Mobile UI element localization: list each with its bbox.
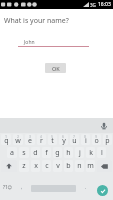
staticText: 7 xyxy=(73,134,76,139)
button[interactable]: 3 xyxy=(25,134,35,145)
staticText: w xyxy=(15,136,21,145)
staticText: o xyxy=(94,136,99,145)
button[interactable]: d xyxy=(31,147,40,158)
staticText: b xyxy=(66,161,71,171)
button[interactable]: j xyxy=(75,147,84,158)
button[interactable]: Shift xyxy=(1,160,17,172)
staticText: . xyxy=(85,184,87,191)
staticText: p xyxy=(105,136,110,145)
button[interactable]: 0 xyxy=(103,134,112,145)
staticText: 0 xyxy=(106,134,109,139)
button[interactable]: ?1☺ xyxy=(1,181,15,193)
button[interactable]: 6 xyxy=(59,134,68,145)
button[interactable]: 1 xyxy=(1,134,11,145)
staticText: l xyxy=(101,148,103,158)
staticText: 2 xyxy=(17,134,20,139)
staticText: What is your name? xyxy=(4,16,69,26)
staticText: k xyxy=(89,148,93,158)
button[interactable]: f xyxy=(42,147,51,158)
button[interactable]: 4 xyxy=(37,134,46,145)
button[interactable]: 5 xyxy=(48,134,57,145)
staticText: 3G xyxy=(90,2,96,8)
staticText: i xyxy=(85,136,87,145)
staticText: v xyxy=(56,161,60,171)
button[interactable]: 9 xyxy=(92,134,101,145)
button[interactable]: OK xyxy=(45,63,66,73)
staticText: 16:03 xyxy=(98,1,111,8)
staticText: 5 xyxy=(51,134,54,139)
staticText: g xyxy=(55,148,60,158)
button[interactable]: Backspace xyxy=(97,160,112,172)
button[interactable]: x xyxy=(31,160,40,172)
staticText: 4 xyxy=(40,134,43,139)
staticText: j xyxy=(79,148,81,158)
staticText: n xyxy=(77,161,82,171)
staticText: 3 xyxy=(29,134,32,139)
button[interactable]: l xyxy=(97,147,106,158)
button[interactable]: v xyxy=(53,160,62,172)
button[interactable]: , xyxy=(16,181,28,193)
staticText: 9 xyxy=(95,134,98,139)
button[interactable]: Voice input xyxy=(100,122,108,130)
staticText: d xyxy=(33,148,38,158)
button[interactable]: m xyxy=(86,160,95,172)
staticText: 8 xyxy=(84,134,87,139)
button[interactable]: b xyxy=(64,160,73,172)
staticText: , xyxy=(21,184,23,191)
button[interactable]: c xyxy=(42,160,51,172)
button[interactable]: h xyxy=(64,147,73,158)
staticText: z xyxy=(22,161,26,171)
staticText: q xyxy=(4,136,9,145)
button[interactable]: g xyxy=(53,147,62,158)
button[interactable]: n xyxy=(75,160,84,172)
button[interactable]: z xyxy=(19,160,29,172)
staticText: s xyxy=(22,148,26,158)
staticText: r xyxy=(40,136,43,145)
button[interactable]: k xyxy=(86,147,95,158)
button[interactable]: 2 xyxy=(13,134,23,145)
staticText: f xyxy=(45,148,48,158)
staticText: u xyxy=(72,136,77,145)
staticText: 6 xyxy=(62,134,65,139)
button[interactable]: Enter xyxy=(97,185,108,196)
staticText: 1 xyxy=(5,134,8,139)
staticText: ?1☺ xyxy=(3,184,13,190)
button[interactable]: 7 xyxy=(70,134,79,145)
staticText: OK xyxy=(52,65,60,72)
button[interactable]: a xyxy=(7,147,17,158)
staticText: h xyxy=(66,148,71,158)
staticText: x xyxy=(34,161,38,171)
staticText: y xyxy=(62,136,66,145)
staticText: m xyxy=(87,161,94,171)
button[interactable]: . xyxy=(80,181,92,193)
staticText: John xyxy=(24,39,35,46)
staticText: t xyxy=(51,136,54,145)
staticText: a xyxy=(10,148,14,158)
button[interactable]: s xyxy=(19,147,29,158)
staticText: e xyxy=(28,136,32,145)
button[interactable]: 8 xyxy=(81,134,90,145)
staticText: c xyxy=(45,161,49,171)
